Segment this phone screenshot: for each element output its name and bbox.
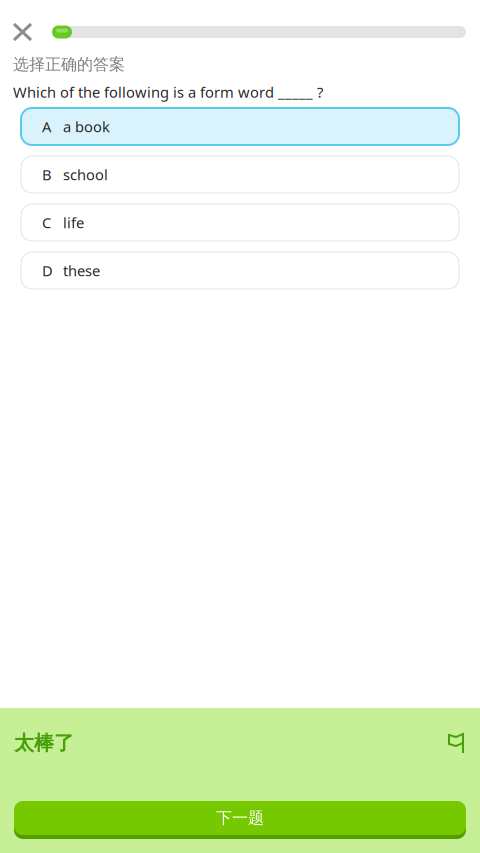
staticText: these: [63, 261, 100, 280]
staticText: a book: [63, 117, 110, 136]
staticText: C: [42, 213, 51, 232]
button[interactable]: 下一题: [14, 801, 466, 839]
staticText: school: [63, 165, 108, 184]
staticText: A: [42, 117, 51, 136]
staticText: 太棒了: [14, 731, 74, 755]
staticText: B: [42, 165, 52, 184]
button[interactable]: A: [21, 108, 459, 145]
staticText: life: [63, 213, 84, 232]
button[interactable]: B: [21, 156, 459, 193]
staticText: 选择正确的答案: [13, 55, 125, 74]
button[interactable]: Close: [0, 14, 52, 50]
button[interactable]: D: [21, 252, 459, 289]
button[interactable]: Report a problem: [440, 726, 472, 760]
staticText: 下一题: [216, 808, 264, 828]
staticText: Which of the following is a form word __…: [13, 82, 323, 102]
staticText: D: [42, 261, 53, 280]
button[interactable]: C: [21, 204, 459, 241]
